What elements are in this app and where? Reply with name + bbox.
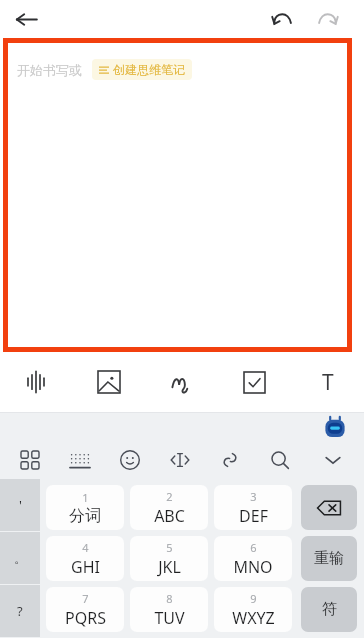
button[interactable]: Search (255, 441, 305, 479)
staticText: WXYZ (232, 607, 275, 629)
button[interactable]: ? (0, 585, 40, 637)
staticText: PQRS (65, 607, 106, 629)
button[interactable]: 开始书写或 (8, 43, 347, 347)
button[interactable]: 7 (46, 587, 124, 632)
button[interactable]: ' (0, 479, 40, 531)
staticText: 3 (250, 489, 257, 504)
staticText: 9 (250, 591, 257, 606)
button[interactable]: Symbols (301, 587, 357, 632)
button[interactable]: Hide keyboard (305, 441, 360, 479)
staticText: 6 (250, 540, 257, 555)
button[interactable]: 。 (0, 532, 40, 584)
button[interactable]: Clipboard (205, 441, 255, 479)
button[interactable]: 8 (130, 587, 208, 632)
button[interactable]: Image (72, 352, 145, 412)
staticText: 7 (82, 591, 89, 606)
button[interactable]: Undo (264, 2, 298, 36)
button[interactable]: 2 (130, 485, 208, 530)
button[interactable]: 9 (214, 587, 292, 632)
button[interactable]: 3 (214, 485, 292, 530)
staticText: MNO (233, 556, 273, 578)
staticText: 1 (82, 490, 89, 505)
staticText: 5 (166, 540, 173, 555)
button[interactable]: Redo (312, 2, 346, 36)
staticText: TUV (154, 607, 185, 629)
staticText: GHI (71, 556, 100, 578)
staticText: ABC (154, 505, 185, 527)
button[interactable]: Cursor (155, 441, 205, 479)
button[interactable]: 5 (130, 536, 208, 581)
staticText: DEF (239, 505, 268, 527)
button[interactable]: Assistant (322, 415, 348, 441)
staticText: ' (19, 496, 22, 514)
staticText: 。 (14, 550, 27, 566)
button[interactable]: Checklist (218, 352, 291, 412)
button[interactable]: 6 (214, 536, 292, 581)
button[interactable]: 1 (46, 485, 124, 530)
button[interactable]: 4 (46, 536, 124, 581)
staticText: 4 (82, 540, 89, 555)
staticText: 重输 (314, 549, 344, 568)
button[interactable]: Handwriting (145, 352, 218, 412)
staticText: 8 (166, 591, 173, 606)
button[interactable]: Apps (4, 441, 55, 479)
staticText: ? (17, 602, 23, 620)
staticText: T (322, 368, 334, 397)
button[interactable]: Keyboard layout (55, 441, 105, 479)
button[interactable]: 创建思维笔记 (92, 59, 192, 80)
staticText: 开始书写或 (17, 62, 82, 78)
button[interactable]: Voice (0, 352, 72, 412)
button[interactable]: Back (8, 1, 44, 37)
button[interactable]: Delete (301, 485, 357, 530)
staticText: 符 (322, 600, 337, 619)
staticText: 2 (166, 489, 173, 504)
button[interactable]: 重输 (301, 536, 357, 581)
button[interactable]: Text (291, 352, 364, 412)
staticText: 分词 (69, 506, 101, 526)
button[interactable]: Emoji (105, 441, 155, 479)
staticText: 创建思维笔记 (113, 62, 185, 77)
staticText: JKL (158, 556, 181, 578)
